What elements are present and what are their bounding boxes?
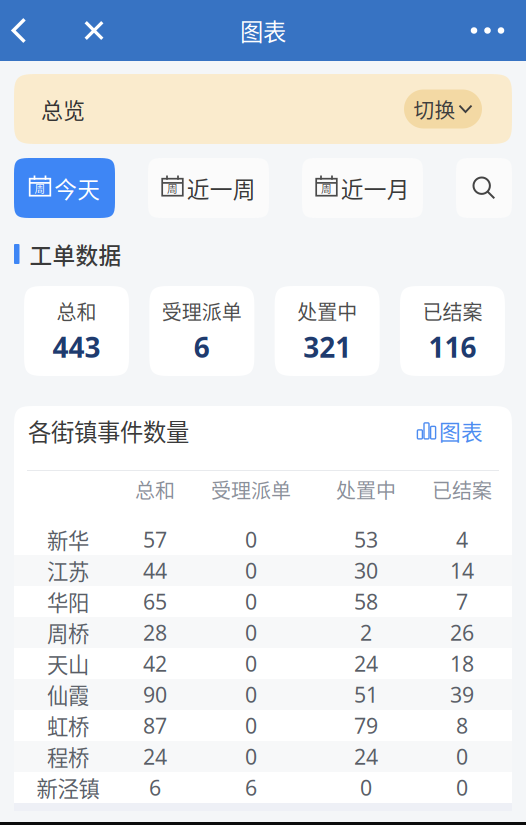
button[interactable]: 周	[148, 158, 269, 218]
staticText: 总和	[135, 475, 175, 504]
staticText: 近一周	[187, 172, 256, 204]
staticText: 0	[245, 711, 257, 740]
staticText: 周	[321, 180, 332, 196]
staticText: 6	[194, 328, 210, 366]
staticText: 处置中	[336, 475, 396, 504]
staticText: 仙霞	[47, 679, 89, 710]
staticText: 4	[456, 525, 468, 554]
staticText: 虹桥	[47, 710, 89, 741]
staticText: 90	[143, 680, 167, 709]
staticText: 6	[149, 773, 161, 802]
staticText: 受理派单	[211, 475, 291, 504]
button[interactable]: Back	[0, 0, 38, 61]
staticText: 总和	[57, 296, 97, 325]
staticText: 0	[456, 773, 468, 802]
staticText: 24	[354, 742, 378, 771]
staticText: 江苏	[47, 555, 89, 586]
staticText: 0	[245, 525, 257, 554]
staticText: 总览	[41, 93, 85, 125]
staticText: 周	[167, 180, 178, 196]
staticText: 116	[428, 328, 476, 366]
staticText: 44	[143, 556, 167, 585]
staticText: 0	[360, 773, 372, 802]
staticText: 周	[34, 180, 45, 196]
button[interactable]: 周	[14, 158, 115, 218]
staticText: 321	[303, 328, 351, 366]
staticText: 0	[245, 556, 257, 585]
staticText: 周桥	[47, 617, 89, 648]
staticText: 受理派单	[162, 296, 242, 325]
staticText: 14	[450, 556, 474, 585]
staticText: 已结案	[422, 296, 482, 325]
button[interactable]: Search	[456, 158, 512, 218]
staticText: 42	[143, 649, 167, 678]
staticText: 今天	[54, 172, 100, 204]
staticText: 新泾镇	[36, 772, 99, 803]
staticText: 各街镇事件数量	[28, 414, 189, 448]
staticText: 26	[450, 618, 474, 647]
staticText: 53	[354, 525, 378, 554]
staticText: 新华	[47, 524, 89, 555]
button[interactable]: 图表	[417, 415, 498, 447]
button[interactable]: More	[462, 0, 513, 61]
staticText: 0	[245, 618, 257, 647]
staticText: 程桥	[47, 741, 89, 772]
staticText: 7	[456, 587, 468, 616]
staticText: 0	[245, 680, 257, 709]
staticText: 18	[450, 649, 474, 678]
staticText: 51	[354, 680, 378, 709]
staticText: 华阳	[47, 586, 89, 617]
staticText: 0	[245, 742, 257, 771]
staticText: 79	[354, 711, 378, 740]
staticText: 24	[354, 649, 378, 678]
staticText: 65	[143, 587, 167, 616]
staticText: 天山	[47, 648, 89, 679]
staticText: 2	[360, 618, 372, 647]
staticText: 0	[456, 742, 468, 771]
staticText: 已结案	[432, 475, 492, 504]
staticText: 图表	[439, 415, 483, 447]
staticText: 0	[245, 649, 257, 678]
button[interactable]: 周	[302, 158, 423, 218]
staticText: 39	[450, 680, 474, 709]
staticText: 28	[143, 618, 167, 647]
staticText: 30	[354, 556, 378, 585]
staticText: 切换	[413, 94, 455, 124]
staticText: 58	[354, 587, 378, 616]
staticText: 0	[245, 587, 257, 616]
staticText: 图表	[240, 14, 286, 47]
staticText: 8	[456, 711, 468, 740]
button[interactable]: Close	[66, 0, 122, 61]
staticText: 24	[143, 742, 167, 771]
staticText: 57	[143, 525, 167, 554]
staticText: 6	[245, 773, 257, 802]
staticText: 近一月	[341, 172, 410, 204]
staticText: 工单数据	[29, 238, 121, 270]
staticText: 443	[53, 328, 101, 366]
staticText: 87	[143, 711, 167, 740]
staticText: 处置中	[297, 296, 357, 325]
button[interactable]: 切换	[404, 89, 482, 128]
